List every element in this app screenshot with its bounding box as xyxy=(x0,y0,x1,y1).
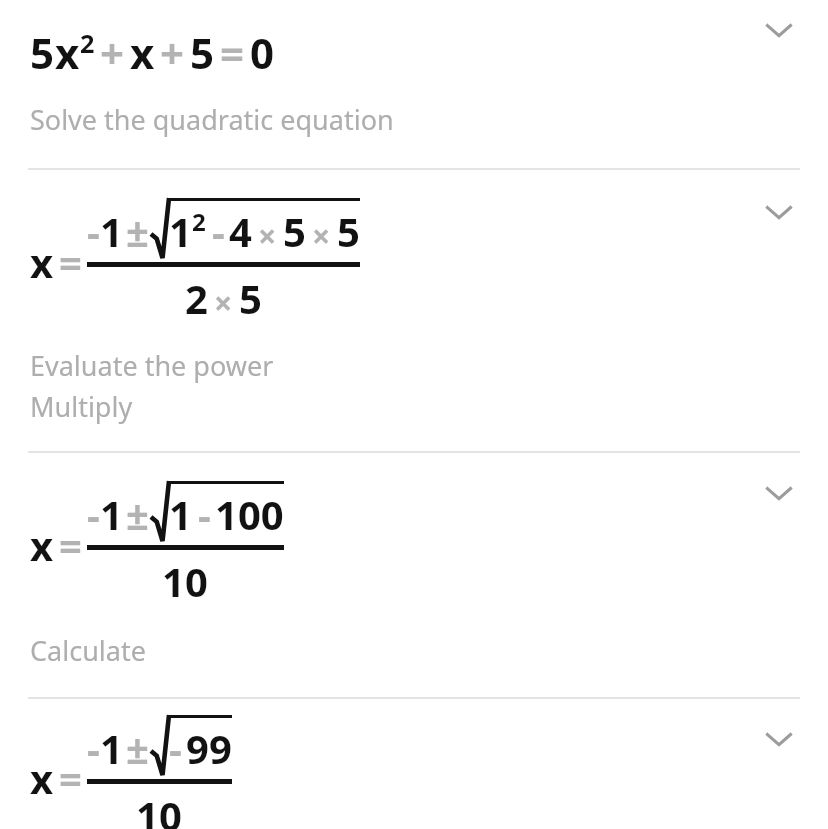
staticText: x xyxy=(30,751,54,805)
staticText: 4 xyxy=(229,204,252,258)
staticText: + xyxy=(160,24,185,81)
staticText: 1 xyxy=(100,721,123,775)
staticText: × xyxy=(214,281,233,325)
staticText: - xyxy=(212,204,225,258)
staticText: - xyxy=(198,487,211,541)
staticText: 5 xyxy=(30,24,55,81)
button[interactable]: Expand step xyxy=(751,465,807,521)
staticText: - xyxy=(87,204,100,258)
staticText: - xyxy=(87,721,100,775)
staticText: - xyxy=(169,721,182,775)
staticText: 1 xyxy=(100,487,123,541)
button[interactable]: 5 xyxy=(0,0,828,168)
staticText: = xyxy=(59,235,82,289)
button[interactable]: Expand step xyxy=(751,2,807,58)
button[interactable]: Expand step xyxy=(751,184,807,240)
staticText: 2 xyxy=(185,271,208,325)
staticText: = xyxy=(59,751,82,805)
staticText: 1 xyxy=(100,204,123,258)
staticText: Calculate xyxy=(30,632,146,669)
staticText: 10 xyxy=(136,788,182,829)
staticText: × xyxy=(312,214,331,258)
staticText: 5 xyxy=(190,24,215,81)
staticText: 10 xyxy=(162,554,208,608)
button[interactable]: Expand step xyxy=(751,711,807,767)
staticText: x xyxy=(30,518,54,572)
staticText: Solve the quadratic equation xyxy=(30,101,394,138)
staticText: x xyxy=(55,24,80,81)
staticText: = xyxy=(220,24,245,81)
staticText: 5 xyxy=(239,271,262,325)
staticText: 5 xyxy=(283,204,306,258)
button[interactable]: x xyxy=(0,699,828,829)
staticText: ± xyxy=(126,204,149,258)
staticText: ± xyxy=(126,487,149,541)
staticText: Multiply xyxy=(30,388,133,425)
staticText: × xyxy=(258,214,277,258)
staticText: ± xyxy=(126,721,149,775)
staticText: + xyxy=(100,24,125,81)
staticText: - xyxy=(87,487,100,541)
staticText: 2 xyxy=(80,26,95,60)
staticText: 99 xyxy=(186,721,232,775)
staticText: 100 xyxy=(215,487,284,541)
staticText: 1 xyxy=(169,487,192,541)
staticText: = xyxy=(59,518,82,572)
staticText: 0 xyxy=(250,24,275,81)
staticText: 2 xyxy=(192,205,206,238)
staticText: 1 xyxy=(169,204,192,258)
button[interactable]: x xyxy=(0,453,828,697)
staticText: x xyxy=(30,235,54,289)
staticText: Evaluate the power xyxy=(30,347,274,384)
button[interactable]: x xyxy=(0,170,828,451)
staticText: x xyxy=(130,24,155,81)
staticText: 5 xyxy=(337,204,360,258)
